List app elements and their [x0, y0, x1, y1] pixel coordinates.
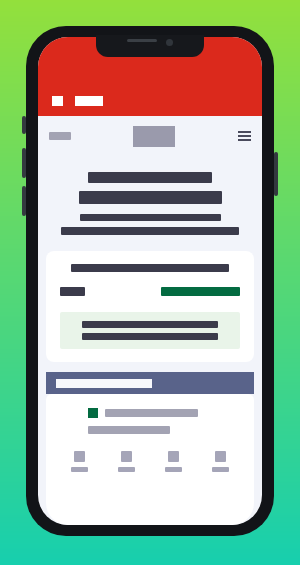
- button[interactable]: Action: [161, 287, 240, 296]
- button[interactable]: Home: [56, 451, 103, 472]
- button[interactable]: Menu: [237, 129, 251, 143]
- button[interactable]: Search: [103, 451, 150, 472]
- button[interactable]: Profile: [197, 451, 244, 472]
- button[interactable]: Label: [60, 287, 85, 296]
- button[interactable]: Search: [46, 372, 254, 394]
- button[interactable]: Label: [46, 251, 254, 362]
- button[interactable]: Saved: [150, 451, 197, 472]
